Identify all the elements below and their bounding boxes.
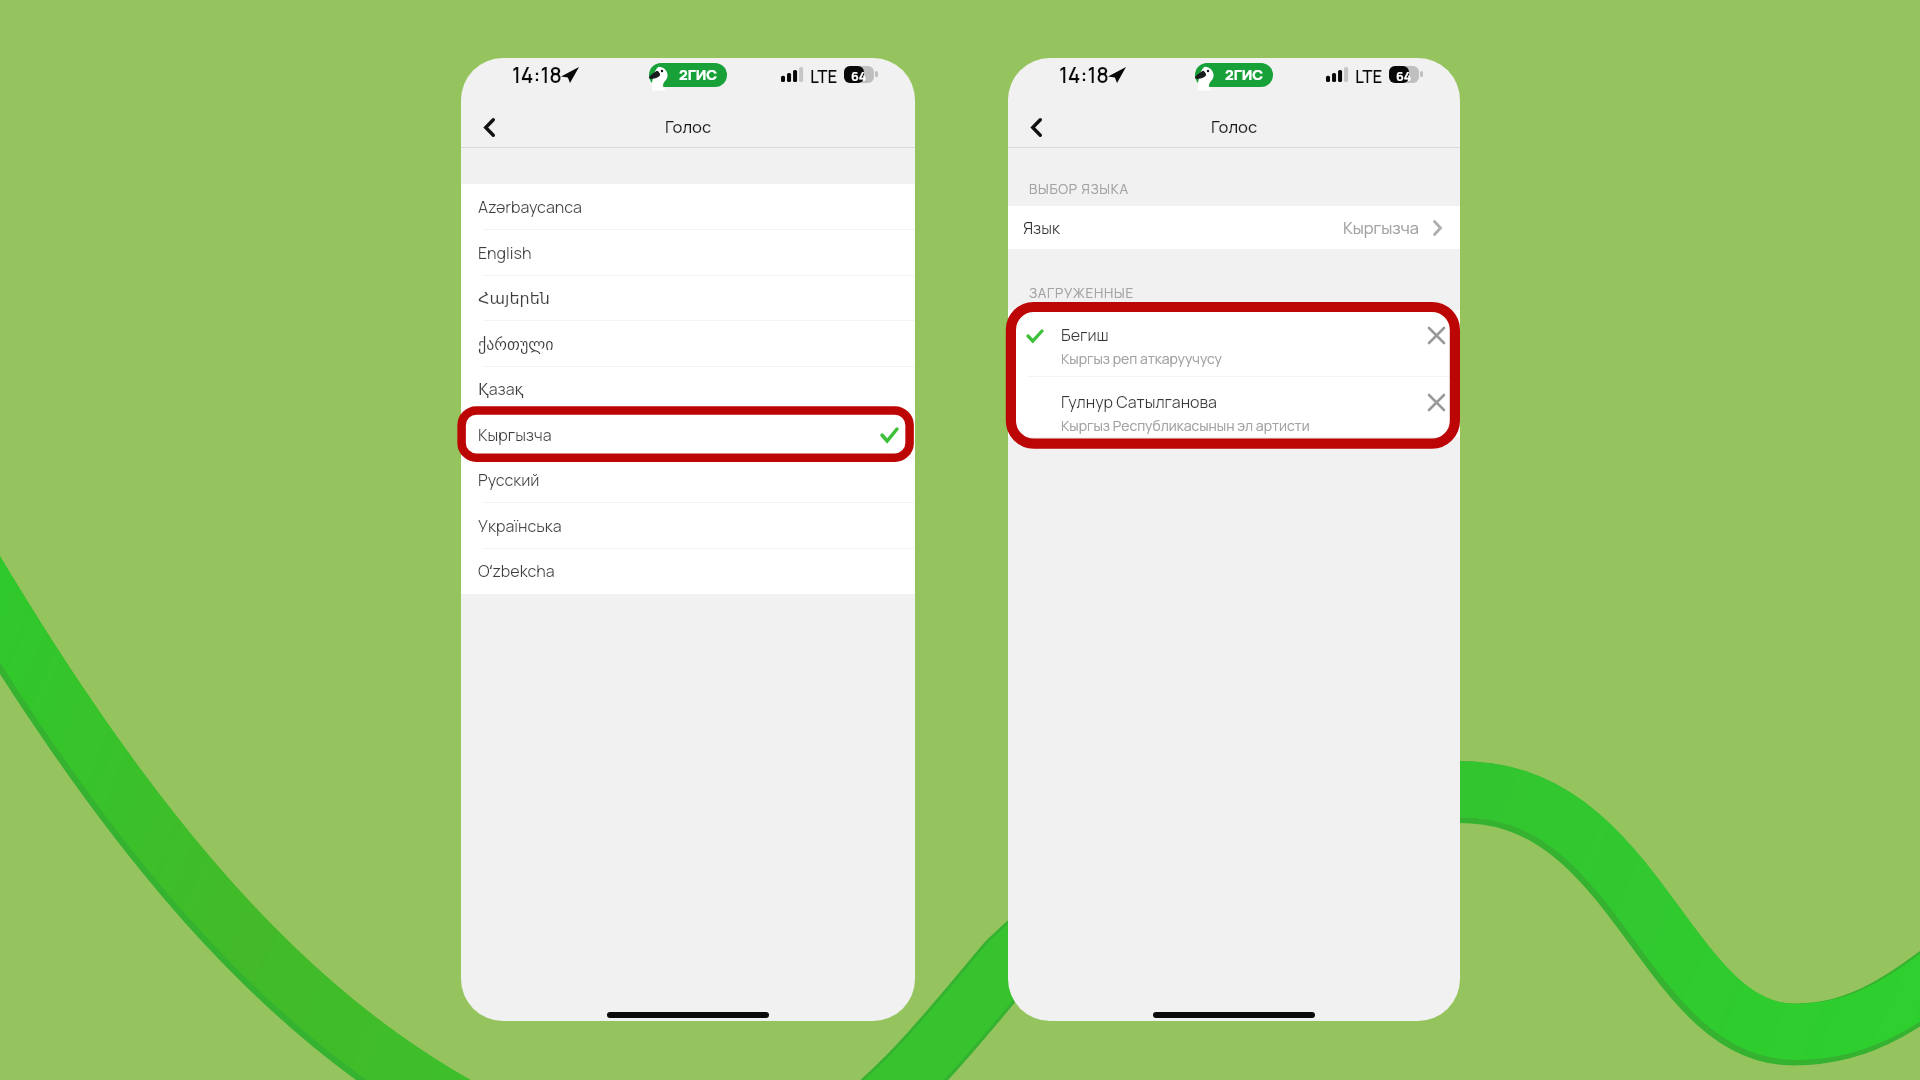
staticText: Кыргызча — [1343, 216, 1419, 239]
button[interactable]: Remove — [1422, 388, 1450, 416]
staticText: Кыргыз реп аткаруучусу — [1061, 349, 1222, 368]
button[interactable]: Бегиш — [1008, 310, 1460, 377]
button[interactable]: Azərbaycanca — [461, 184, 915, 230]
staticText: 14:18 — [512, 61, 562, 90]
staticText: Язык — [1023, 217, 1060, 239]
button[interactable]: ქართული — [461, 321, 915, 367]
button[interactable]: Українська — [461, 503, 915, 549]
staticText: 2ГИС — [679, 65, 718, 85]
button[interactable]: Remove — [1422, 321, 1450, 349]
staticText: Oʻzbekcha — [478, 560, 555, 582]
staticText: 64 — [851, 68, 867, 85]
staticText: ქართული — [478, 335, 554, 354]
button[interactable]: Back — [469, 107, 509, 147]
staticText: Azərbaycanca — [478, 196, 582, 218]
staticText: 14:18 — [1059, 61, 1109, 90]
staticText: Кыргызча — [478, 424, 552, 446]
staticText: Голос — [665, 115, 712, 138]
staticText: 64 — [1396, 68, 1412, 85]
button[interactable]: Back — [1016, 107, 1056, 147]
staticText: LTE — [1355, 65, 1383, 88]
button[interactable]: Oʻzbekcha — [461, 548, 915, 594]
staticText: Гулнур Сатылганова — [1061, 391, 1218, 413]
staticText: Бегиш — [1061, 324, 1109, 346]
staticText: Қазақ — [478, 378, 524, 400]
staticText: LTE — [810, 65, 838, 88]
staticText: Русский — [478, 469, 540, 491]
button[interactable]: Язык — [1008, 206, 1460, 249]
staticText: 2ГИС — [1225, 65, 1264, 85]
staticText: English — [478, 242, 532, 264]
button[interactable]: Հայերեն — [461, 275, 915, 321]
staticText: Голос — [1211, 115, 1258, 138]
button[interactable]: English — [461, 230, 915, 276]
staticText: Кыргыз Республикасынын эл артисти — [1061, 416, 1310, 435]
button[interactable]: Кыргызча — [461, 412, 915, 458]
button[interactable]: Қазақ — [461, 366, 915, 412]
staticText: Українська — [478, 515, 562, 537]
button[interactable]: Гулнур Сатылганова — [1008, 377, 1460, 437]
staticText: ЗАГРУЖЕННЫЕ — [1029, 284, 1134, 302]
button[interactable]: Русский — [461, 457, 915, 503]
staticText: Հայերեն — [478, 289, 550, 308]
staticText: ВЫБОР ЯЗЫКА — [1029, 180, 1129, 198]
